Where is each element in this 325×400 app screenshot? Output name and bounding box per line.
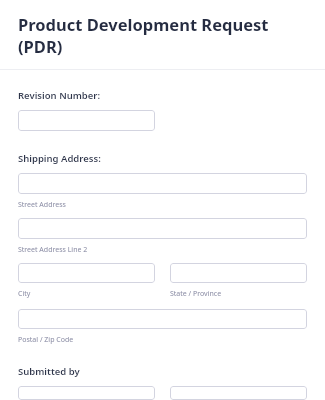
button[interactable] <box>170 263 307 283</box>
button[interactable] <box>18 386 155 400</box>
staticText: Street Address Line 2 <box>18 245 307 255</box>
staticText: Shipping Address: <box>18 152 101 165</box>
button[interactable] <box>170 386 307 400</box>
staticText: Revision Number: <box>18 89 101 102</box>
staticText: Product Development Request (PDR) <box>18 13 317 57</box>
staticText: City <box>18 289 155 299</box>
button[interactable] <box>18 173 307 194</box>
button[interactable] <box>18 263 155 283</box>
staticText: Submitted by <box>18 365 80 378</box>
button[interactable] <box>18 309 307 329</box>
staticText: Street Address <box>18 200 307 210</box>
button[interactable] <box>18 110 155 131</box>
staticText: State / Province <box>170 289 307 299</box>
staticText: Postal / Zip Code <box>18 335 307 345</box>
button[interactable] <box>18 218 307 239</box>
